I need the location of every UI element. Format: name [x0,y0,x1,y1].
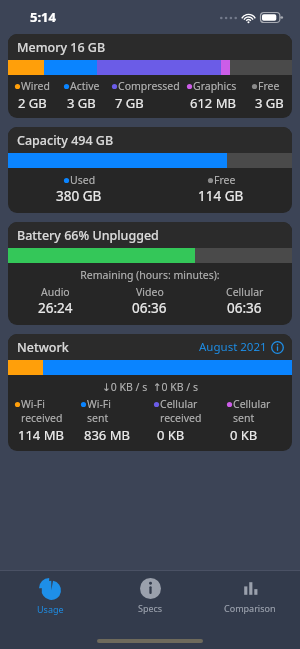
staticText: Cellular [160,397,198,411]
staticText: August 2021 [199,339,267,355]
staticText: 7 GB [115,94,144,112]
staticText: Cellular [233,397,271,411]
staticText: sent [87,411,109,425]
staticText: Wired [21,79,50,93]
staticText: 380 GB [56,187,102,205]
staticText: 114 GB [198,187,244,205]
button[interactable]: Network [8,334,292,451]
staticText: Wi-Fi [87,397,112,411]
staticText: Network [17,339,69,356]
staticText: 3 GB [255,94,284,112]
staticText: Video [136,285,164,299]
staticText: Compressed [118,79,180,93]
staticText: Audio [41,285,70,299]
staticText: 0 KB [157,426,185,444]
staticText: ↓0 KB / s ↑0 KB / s [8,380,292,394]
staticText: 0 KB [230,426,258,444]
staticText: Remaining (hours: minutes): [8,268,292,282]
staticText: 06:36 [227,299,262,317]
staticText: Comparison [224,602,276,614]
button[interactable]: Network info for August 2021 [199,339,284,355]
button[interactable]: Usage [0,571,100,633]
button[interactable]: Comparison [200,571,300,633]
staticText: 06:36 [132,299,167,317]
button[interactable]: Battery 66% Unplugged [8,222,292,325]
staticText: Cellular [226,285,264,299]
button[interactable]: Specs [100,571,200,633]
staticText: 2 GB [18,94,47,112]
staticText: received [160,411,202,425]
staticText: Active [70,79,100,93]
button[interactable]: Memory 16 GB [8,34,292,118]
staticText: 5:14 [30,8,56,26]
staticText: Free [258,79,280,93]
staticText: 3 GB [67,94,96,112]
staticText: sent [233,411,255,425]
staticText: Wi-Fi [21,397,46,411]
staticText: received [21,411,63,425]
staticText: Graphics [193,79,237,93]
staticText: Specs [138,602,163,614]
staticText: Capacity 494 GB [17,132,114,149]
staticText: 114 MB [18,426,64,444]
staticText: Used [70,173,96,187]
staticText: 612 MB [190,94,236,112]
button[interactable]: Capacity 494 GB [8,127,292,213]
staticText: 836 MB [84,426,130,444]
staticText: Free [214,173,236,187]
staticText: Memory 16 GB [17,39,106,56]
staticText: Usage [37,603,64,615]
staticText: 26:24 [38,299,73,317]
staticText: Battery 66% Unplugged [17,227,159,244]
